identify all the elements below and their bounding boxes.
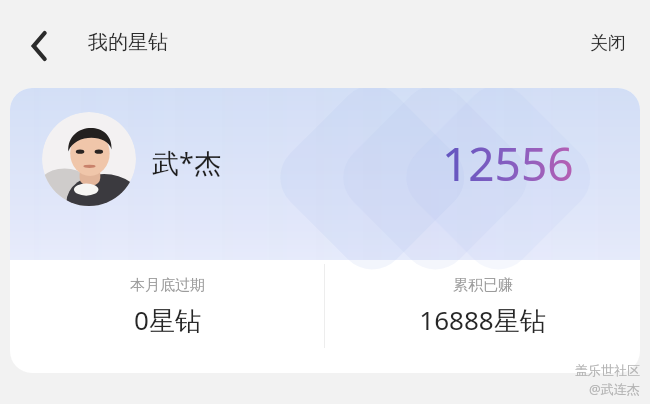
- staticText: 关闭: [590, 32, 626, 55]
- button[interactable]: Profile photo: [42, 112, 136, 206]
- staticText: 0星钻: [134, 302, 201, 338]
- staticText: 16888星钻: [419, 302, 546, 338]
- button[interactable]: 关闭: [580, 24, 636, 63]
- button[interactable]: Back: [18, 24, 62, 68]
- button[interactable]: 本月底过期: [10, 260, 324, 360]
- staticText: @武连杰: [589, 380, 640, 398]
- staticText: 累积已赚: [453, 276, 513, 295]
- staticText: 12556: [442, 132, 574, 195]
- staticText: 武*杰: [152, 144, 221, 181]
- staticText: 盖乐世社区: [575, 362, 640, 378]
- staticText: 本月底过期: [130, 276, 205, 295]
- staticText: 我的星钻: [88, 30, 168, 55]
- button[interactable]: 累积已赚: [325, 260, 640, 360]
